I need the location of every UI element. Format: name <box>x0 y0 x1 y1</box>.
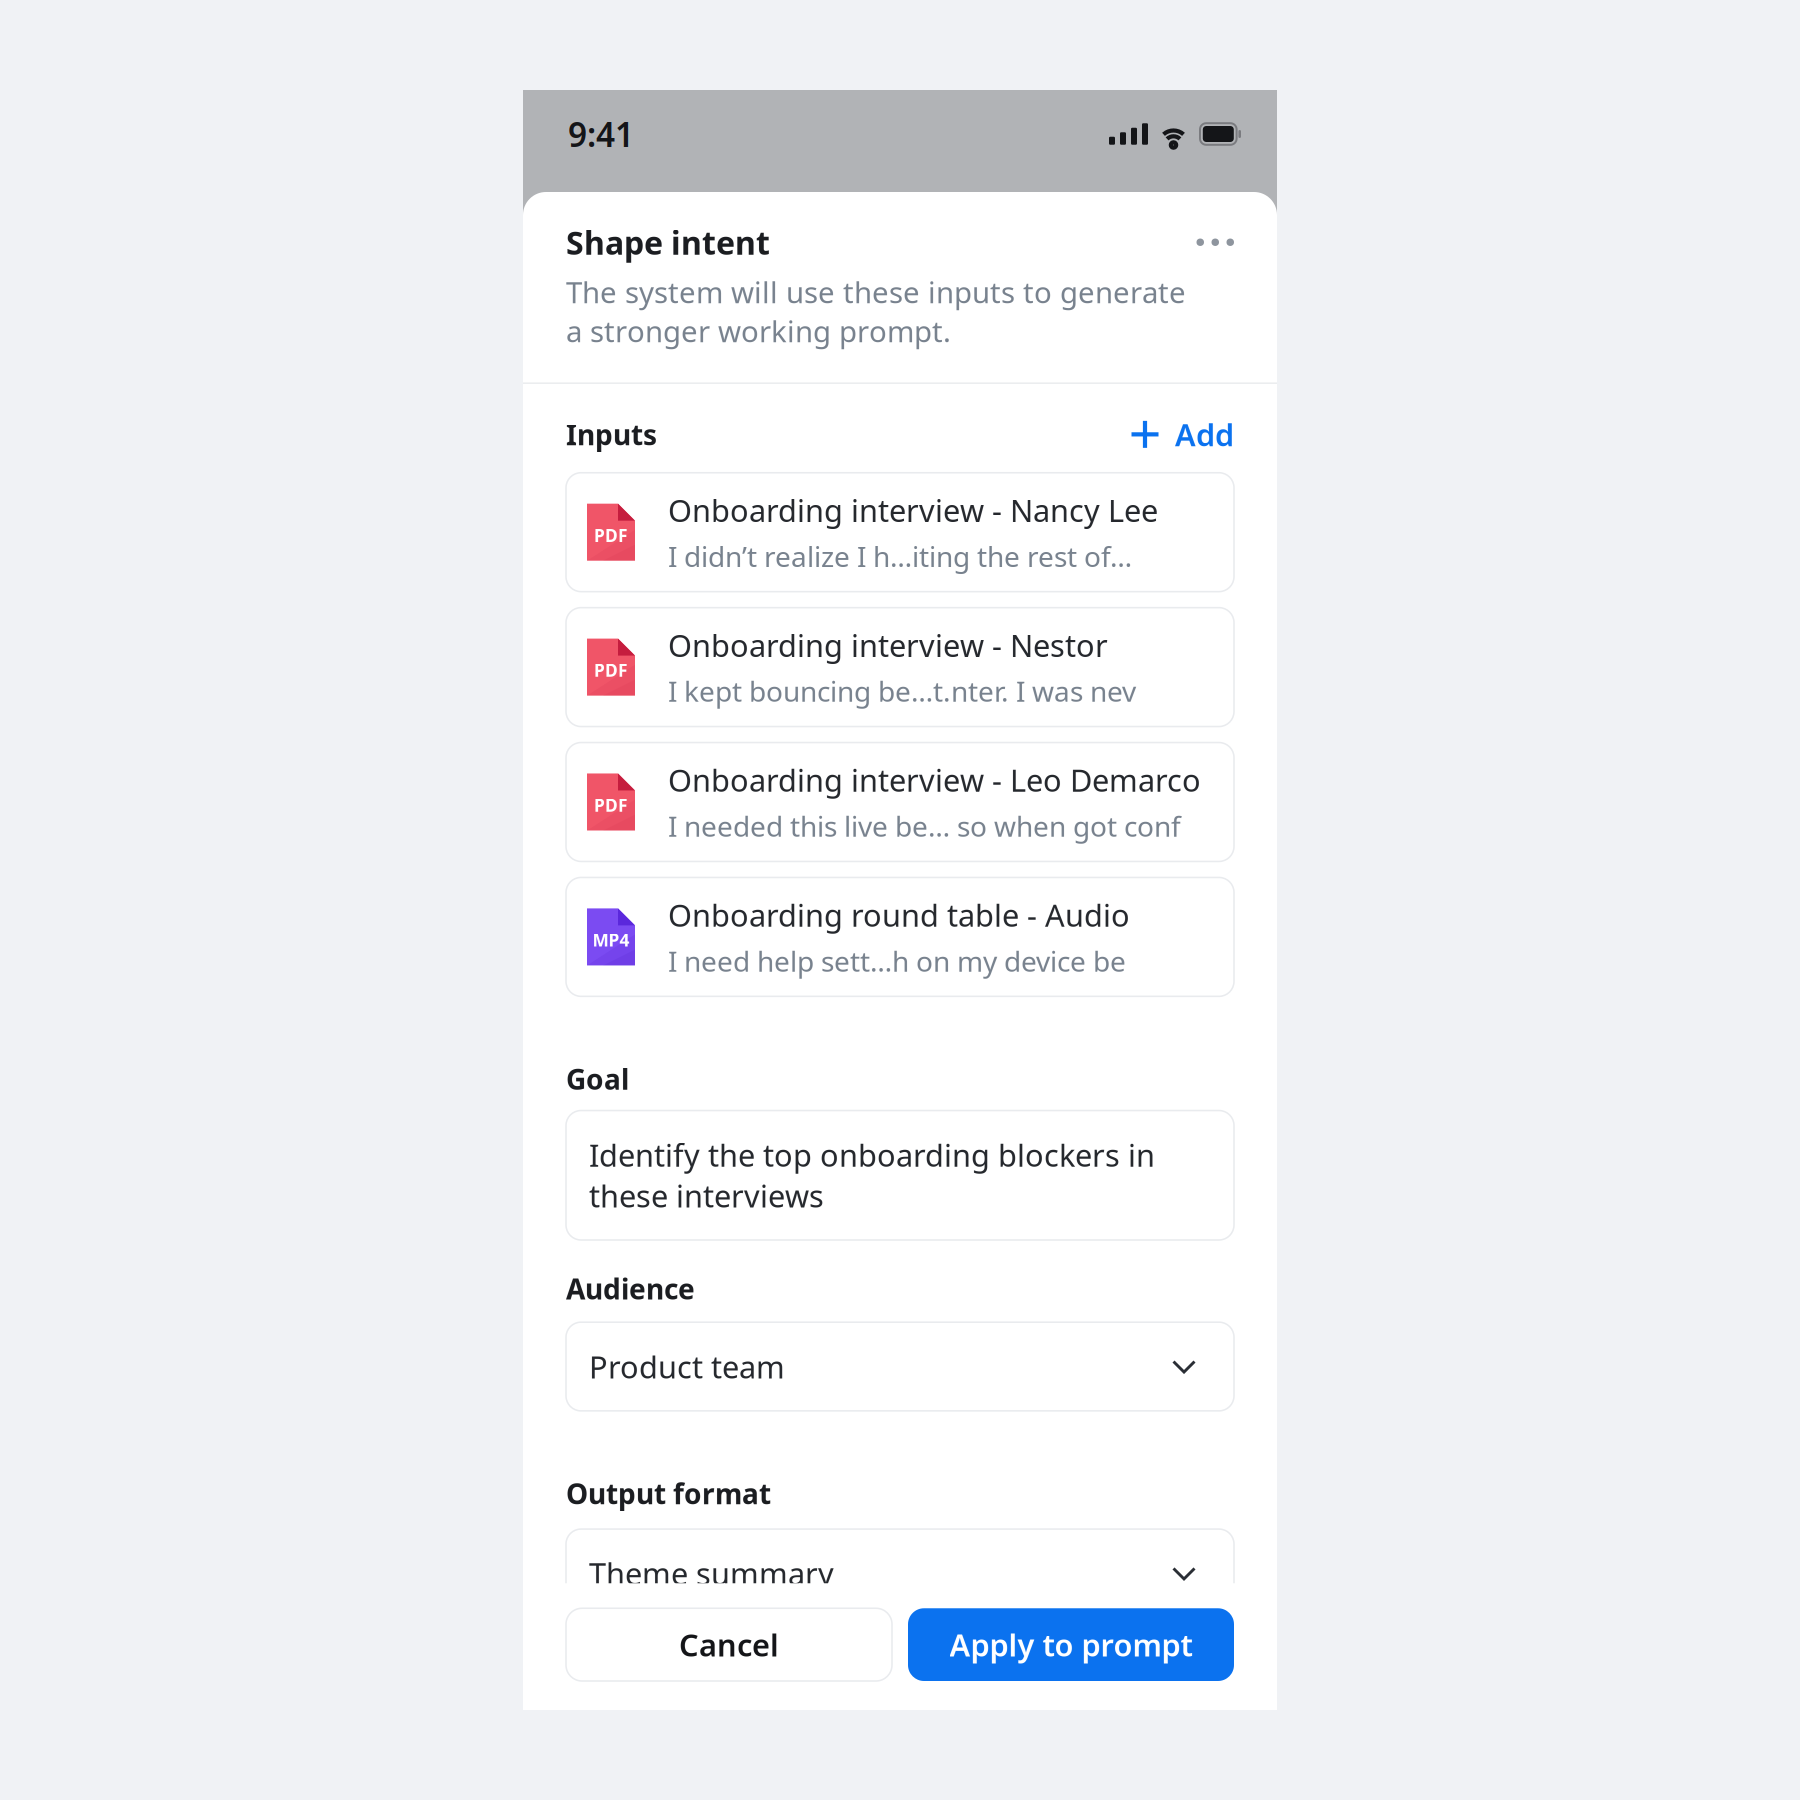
staticText: Cancel <box>679 1624 779 1665</box>
button[interactable]: PDF <box>566 608 1234 726</box>
staticText: Shape intent <box>566 221 770 263</box>
staticText: I need help sett…h on my device be <box>668 942 1126 979</box>
button[interactable]: Product team <box>566 1322 1234 1411</box>
button[interactable]: Identify the top onboarding blockers in … <box>566 1110 1234 1240</box>
staticText: Apply to prompt <box>949 1624 1192 1665</box>
staticText: Theme summary <box>589 1553 834 1594</box>
staticText: Inputs <box>566 416 657 453</box>
staticText: Add <box>1175 414 1234 455</box>
staticText: Identify the top onboarding blockers in … <box>589 1134 1155 1216</box>
button[interactable]: PDF <box>566 473 1234 592</box>
staticText: I didn’t realize I h…iting the rest of… <box>668 537 1132 575</box>
staticText: Goal <box>566 1060 629 1098</box>
staticText: Onboarding interview - Nancy Lee <box>668 490 1158 530</box>
staticText: Onboarding interview - Leo Demarco <box>668 759 1201 800</box>
staticText: Product team <box>589 1346 785 1387</box>
staticText: 9:41 <box>568 112 634 156</box>
button[interactable]: PDF <box>566 742 1234 861</box>
staticText: Onboarding round table - Audio <box>668 894 1130 935</box>
staticText: I kept bouncing be…t.nter. I was nev <box>668 672 1136 710</box>
staticText: PDF <box>594 524 628 547</box>
button[interactable]: Add <box>1131 410 1234 459</box>
button[interactable]: Theme summary <box>566 1529 1234 1618</box>
button[interactable]: More options <box>1180 225 1234 259</box>
staticText: MP4 <box>592 928 629 951</box>
staticText: I needed this live be… so when got conf <box>668 807 1181 844</box>
button[interactable]: MP4 <box>566 877 1234 996</box>
staticText: Onboarding interview - Nestor <box>668 625 1108 665</box>
button[interactable]: Cancel <box>566 1608 892 1681</box>
staticText: Output format <box>566 1475 771 1512</box>
staticText: PDF <box>594 659 628 682</box>
button[interactable]: Apply to prompt <box>908 1608 1234 1681</box>
staticText: PDF <box>594 793 628 816</box>
staticText: Audience <box>566 1270 695 1307</box>
staticText: The system will use these inputs to gene… <box>566 272 1186 350</box>
